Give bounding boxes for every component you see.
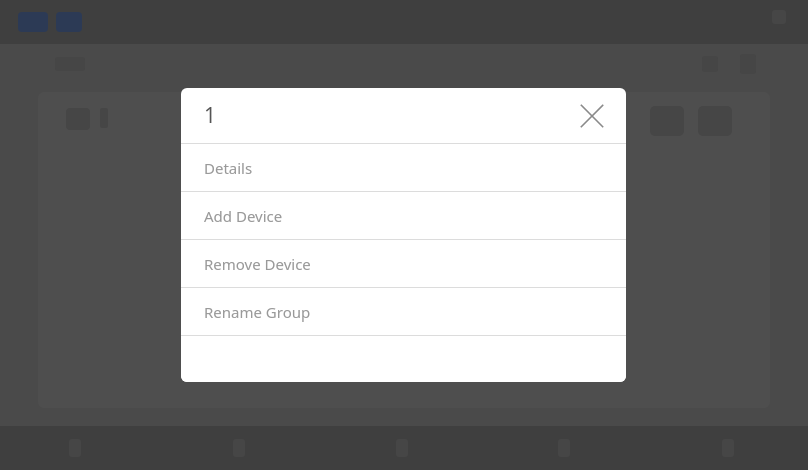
button[interactable] (38, 92, 770, 408)
staticText: Add Device (204, 206, 283, 226)
button[interactable]: Details (181, 144, 626, 191)
button[interactable]: Add Device (181, 192, 626, 239)
staticText: Rename Group (204, 302, 311, 322)
button[interactable]: Close (570, 94, 614, 138)
staticText: Remove Device (204, 254, 311, 274)
staticText: 1 (204, 101, 217, 130)
button[interactable]: Rename Group (181, 288, 626, 335)
button[interactable]: 1 (181, 88, 626, 143)
staticText: Details (204, 158, 253, 178)
button[interactable]: Remove Device (181, 240, 626, 287)
